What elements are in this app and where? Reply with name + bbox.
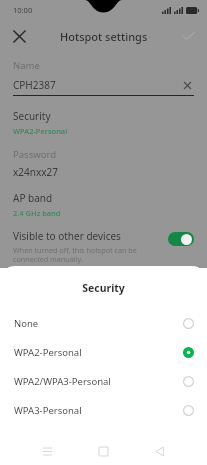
staticText: WPA3-Personal xyxy=(14,404,183,417)
staticText: WPA2-Personal xyxy=(13,126,68,136)
button[interactable]: None xyxy=(0,309,207,338)
staticText: WPA2-Personal xyxy=(14,346,183,359)
staticText: None xyxy=(14,317,183,330)
button[interactable]: Home xyxy=(90,438,116,464)
button[interactable]: WPA2-Personal xyxy=(0,338,207,367)
staticText: WPA2/WPA3-Personal xyxy=(14,375,183,388)
staticText: When turned off, this hotspot can be con… xyxy=(13,245,162,264)
staticText: 10:00 xyxy=(13,5,33,15)
button[interactable]: WPA2/WPA3-Personal xyxy=(0,367,207,396)
staticText: 2.4 GHz band xyxy=(13,208,61,218)
staticText: AP band xyxy=(13,191,53,205)
button[interactable]: Back xyxy=(147,438,173,464)
staticText: Name xyxy=(13,59,40,72)
staticText: Security xyxy=(0,281,207,295)
staticText: Hotspot settings xyxy=(60,29,148,44)
button[interactable]: Clear name xyxy=(180,78,194,92)
staticText: CPH2387 xyxy=(13,78,56,92)
staticText: Security xyxy=(13,109,51,123)
button[interactable]: Close xyxy=(6,23,32,49)
button[interactable]: Recent apps xyxy=(34,438,60,464)
button[interactable]: Visible to other devices toggle xyxy=(168,232,194,246)
button[interactable]: WPA3-Personal xyxy=(0,396,207,425)
staticText: x24nxx27 xyxy=(13,165,58,179)
staticText: Password xyxy=(13,148,56,161)
staticText: Visible to other devices xyxy=(13,229,121,243)
